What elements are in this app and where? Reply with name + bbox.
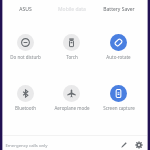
staticText: Aeroplane mode — [54, 105, 90, 111]
staticText: Auto-rotate — [106, 54, 131, 60]
staticText: Screen capture — [103, 105, 135, 111]
button[interactable]: Settings — [133, 139, 144, 150]
button[interactable]: Mobile data — [48, 4, 95, 15]
staticText: Emergency calls only — [5, 142, 48, 148]
staticText: Battery Saver — [103, 6, 135, 13]
button[interactable]: Auto-rotate — [95, 34, 142, 60]
button[interactable]: Aeroplane mode — [48, 85, 95, 111]
button[interactable]: Torch — [48, 34, 95, 60]
staticText: ASUS — [19, 6, 32, 13]
button[interactable]: Bluetooth — [2, 85, 48, 111]
button[interactable]: Edit tiles — [118, 139, 129, 150]
staticText: Bluetooth — [15, 105, 36, 111]
button[interactable]: ASUS — [2, 4, 48, 15]
button[interactable]: Battery Saver — [95, 4, 142, 15]
staticText: Do not disturb — [10, 54, 41, 60]
button[interactable]: Do not disturb — [2, 34, 48, 60]
staticText: Mobile data — [58, 6, 86, 13]
staticText: Torch — [66, 54, 78, 60]
button[interactable]: Screen capture — [95, 85, 142, 111]
